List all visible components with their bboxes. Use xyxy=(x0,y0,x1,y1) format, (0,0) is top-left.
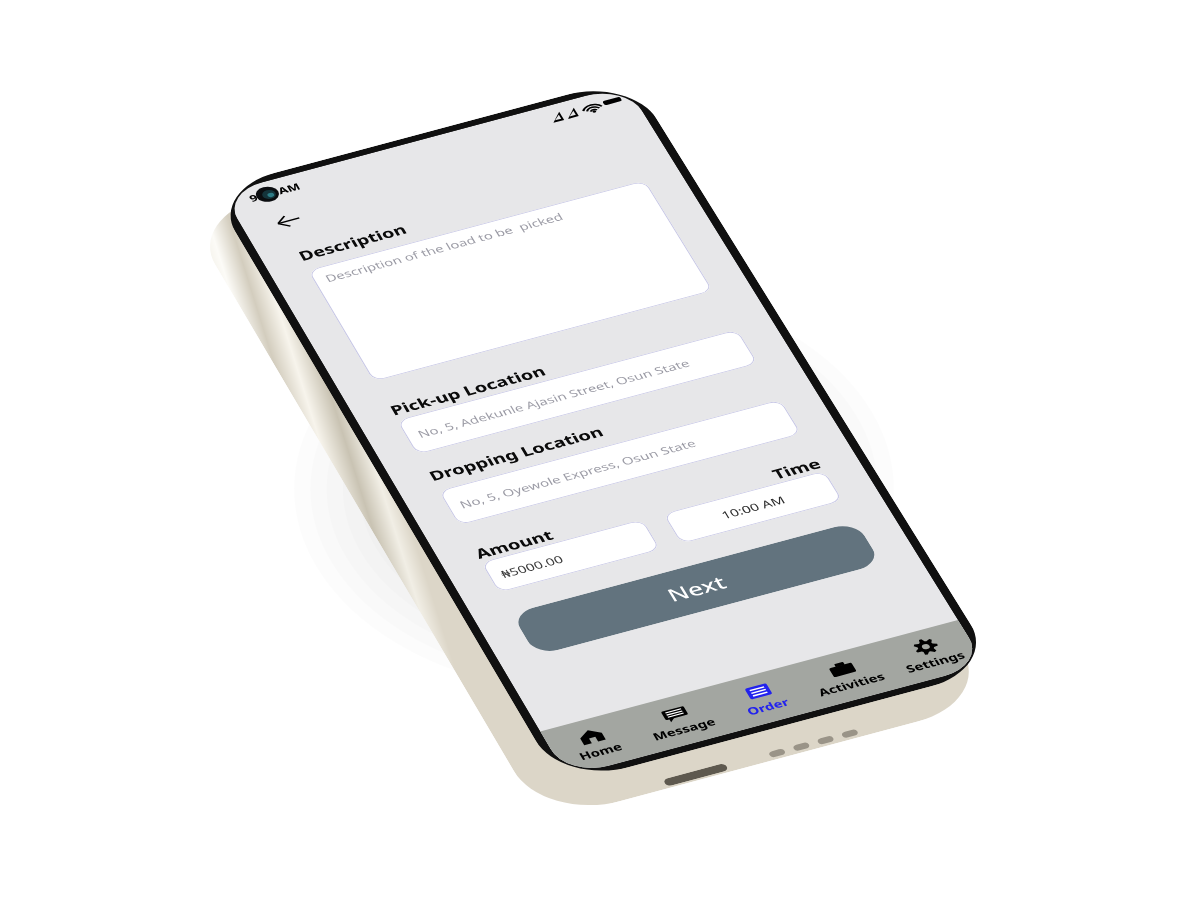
staticText: Description xyxy=(92,268,373,335)
button[interactable]: Description of the load to be picked xyxy=(92,358,988,812)
staticText: Description of the load to be picked xyxy=(122,380,749,430)
